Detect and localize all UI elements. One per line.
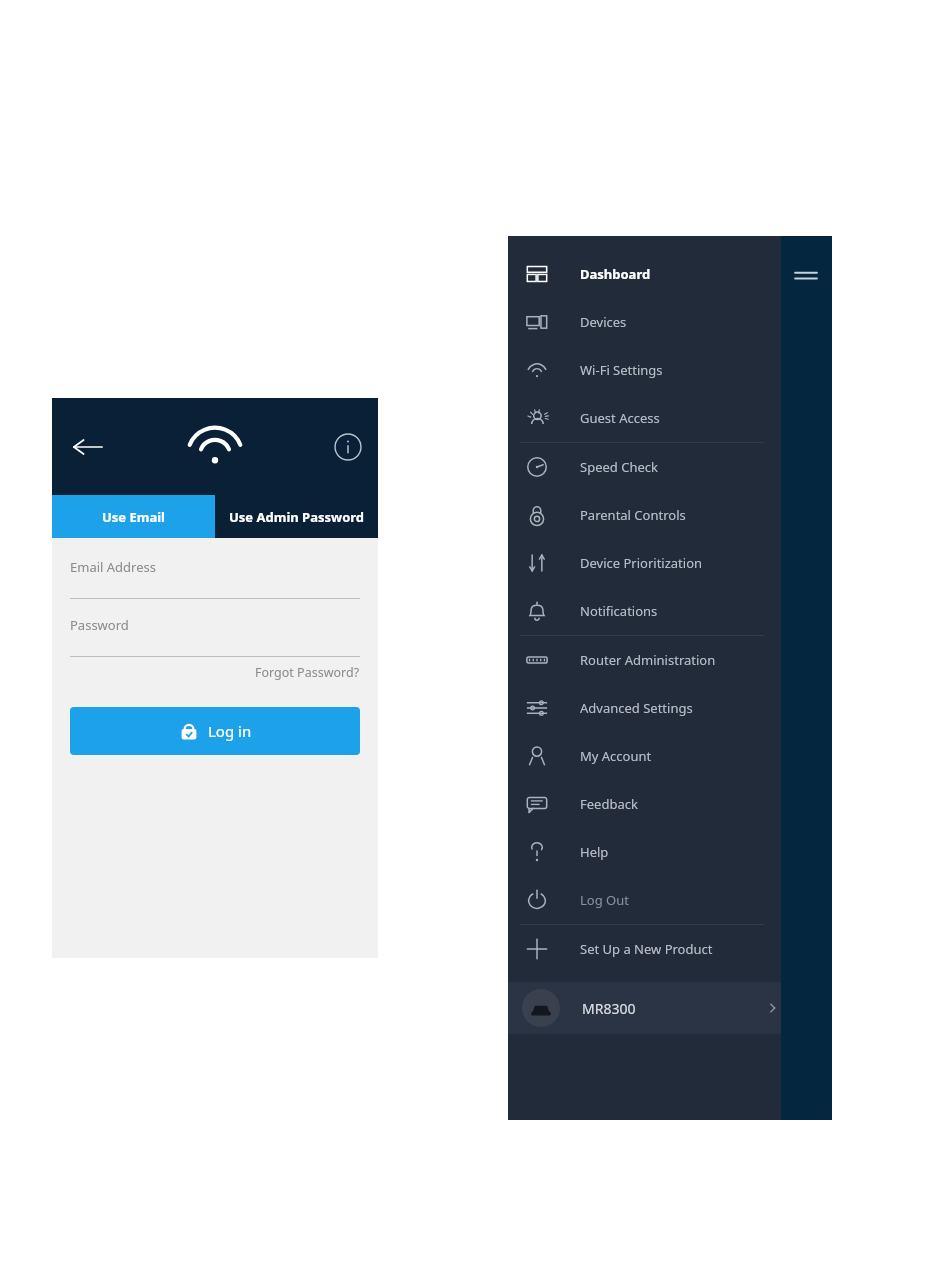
button[interactable]: Use Email xyxy=(52,495,215,538)
button[interactable]: MR8300 xyxy=(508,982,781,1034)
staticText: Devices xyxy=(580,313,627,331)
button[interactable]: Router Administration xyxy=(508,636,832,684)
staticText: Parental Controls xyxy=(580,506,686,524)
staticText: Guest Access xyxy=(580,409,660,427)
staticText: Router Administration xyxy=(580,651,716,669)
staticText: Use Admin Password xyxy=(229,508,365,526)
button[interactable]: Use Admin Password xyxy=(215,495,378,538)
staticText: Speed Check xyxy=(580,458,658,476)
staticText: Log Out xyxy=(580,891,629,909)
button[interactable]: Set Up a New Product xyxy=(508,925,832,973)
staticText: Feedback xyxy=(580,795,638,813)
staticText: My Account xyxy=(580,747,652,765)
staticText: Set Up a New Product xyxy=(580,940,713,958)
staticText: Email Address xyxy=(70,558,156,576)
button[interactable]: Parental Controls xyxy=(508,491,832,539)
staticText: Device Prioritization xyxy=(580,554,703,572)
button[interactable]: My Account xyxy=(508,732,832,780)
button[interactable]: Help xyxy=(508,828,832,876)
button[interactable]: Feedback xyxy=(508,780,832,828)
button[interactable]: Log Out xyxy=(508,876,832,924)
staticText: MR8300 xyxy=(582,999,636,1018)
staticText: Advanced Settings xyxy=(580,699,693,717)
staticText: Password xyxy=(70,616,129,634)
button[interactable]: Speed Check xyxy=(508,443,832,491)
button[interactable]: Advanced Settings xyxy=(508,684,832,732)
button[interactable]: Forgot Password? xyxy=(255,664,360,681)
staticText: Help xyxy=(580,843,609,861)
button[interactable]: Log in xyxy=(70,707,360,755)
button[interactable]: Guest Access xyxy=(508,394,832,442)
staticText: Wi-Fi Settings xyxy=(580,361,663,379)
staticText: Log in xyxy=(208,721,252,741)
staticText: Notifications xyxy=(580,602,658,620)
button[interactable]: Dashboard xyxy=(508,250,832,298)
staticText: Use Email xyxy=(102,508,165,526)
staticText: Dashboard xyxy=(580,265,651,283)
button[interactable]: Close menu xyxy=(790,260,822,292)
button[interactable]: Wi-Fi Settings xyxy=(508,346,832,394)
button[interactable]: Device Prioritization xyxy=(508,539,832,587)
button[interactable]: Back xyxy=(66,425,110,469)
button[interactable]: Info xyxy=(330,429,366,465)
button[interactable]: Devices xyxy=(508,298,832,346)
button[interactable]: Notifications xyxy=(508,587,832,635)
